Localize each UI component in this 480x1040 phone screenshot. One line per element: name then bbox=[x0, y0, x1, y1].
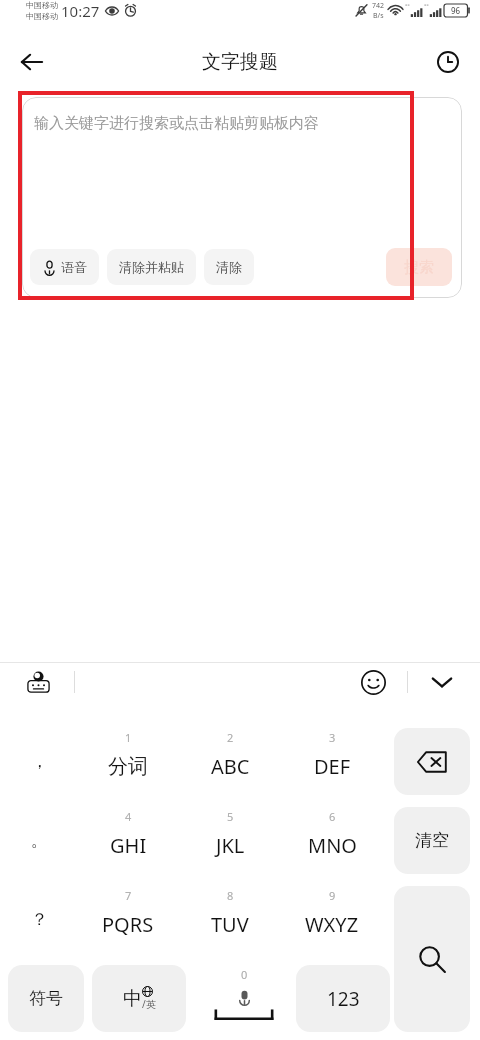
staticText: 742 bbox=[372, 1, 385, 11]
staticText: 清除 bbox=[216, 259, 242, 275]
staticText: / bbox=[142, 997, 146, 1011]
button[interactable]: ！ bbox=[8, 961, 70, 1036]
staticText: 0 bbox=[241, 967, 248, 982]
button[interactable]: 语音 bbox=[30, 249, 99, 285]
staticText: ， bbox=[31, 751, 48, 772]
button[interactable]: 清除并粘贴 bbox=[107, 249, 196, 285]
button[interactable]: 3 bbox=[282, 724, 382, 799]
staticText: 1 bbox=[125, 730, 132, 745]
staticText: ABC bbox=[211, 753, 250, 780]
staticText: MNO bbox=[308, 832, 357, 859]
staticText: 中国移动 bbox=[26, 11, 58, 21]
staticText: 96 bbox=[451, 5, 461, 16]
staticText: ？ bbox=[31, 909, 48, 930]
staticText: 输入关键字进行搜索或点击粘贴剪贴板内容 bbox=[34, 114, 319, 133]
button[interactable]: 输入法设置 bbox=[18, 662, 58, 702]
button[interactable]: 6 bbox=[282, 803, 382, 878]
button[interactable]: 清空 bbox=[394, 807, 470, 874]
staticText: 6 bbox=[329, 809, 336, 824]
button[interactable]: 历史记录 bbox=[426, 40, 470, 84]
button[interactable]: 。 bbox=[8, 803, 70, 878]
button[interactable]: 删除 bbox=[394, 728, 470, 795]
button[interactable]: 收起键盘 bbox=[422, 662, 462, 702]
button[interactable]: 123 bbox=[296, 965, 390, 1032]
staticText: TUV bbox=[211, 911, 249, 938]
staticText: 10:27 bbox=[61, 1, 100, 21]
button[interactable]: 符号 bbox=[8, 965, 84, 1032]
staticText: 文字搜题 bbox=[202, 50, 278, 74]
staticText: B/s bbox=[373, 11, 384, 21]
staticText: 中国移动 bbox=[26, 0, 58, 10]
button[interactable]: 7 bbox=[78, 882, 178, 957]
staticText: 符号 bbox=[29, 988, 63, 1009]
staticText: 。 bbox=[31, 830, 48, 851]
staticText: ！ bbox=[31, 988, 48, 1009]
staticText: 2 bbox=[227, 730, 234, 745]
staticText: 清空 bbox=[415, 830, 449, 851]
staticText: 中 bbox=[123, 987, 142, 1011]
staticText: 8 bbox=[227, 888, 234, 903]
button[interactable]: ， bbox=[8, 724, 70, 799]
staticText: 123 bbox=[327, 986, 360, 1012]
button[interactable]: 4 bbox=[78, 803, 178, 878]
staticText: JKL bbox=[216, 832, 245, 859]
staticText: PQRS bbox=[102, 911, 154, 938]
staticText: GHI bbox=[110, 832, 147, 859]
staticText: 分词 bbox=[108, 754, 148, 779]
button[interactable]: 搜索 bbox=[386, 248, 452, 286]
button[interactable]: 表情 bbox=[353, 662, 393, 702]
button[interactable]: ？ bbox=[8, 882, 70, 957]
staticText: DEF bbox=[314, 753, 351, 780]
staticText: 7 bbox=[125, 888, 132, 903]
staticText: 清除并粘贴 bbox=[119, 259, 184, 275]
button[interactable]: 返回 bbox=[8, 38, 56, 86]
staticText: 5 bbox=[227, 809, 234, 824]
staticText: 9 bbox=[329, 888, 336, 903]
button[interactable]: 9 bbox=[282, 882, 382, 957]
staticText: 3 bbox=[329, 730, 336, 745]
button[interactable]: 2 bbox=[180, 724, 280, 799]
staticText: 4 bbox=[125, 809, 132, 824]
button[interactable]: 搜索 bbox=[394, 886, 470, 1032]
staticText: 语音 bbox=[61, 259, 87, 275]
button[interactable]: 8 bbox=[180, 882, 280, 957]
button[interactable]: 空格 bbox=[194, 965, 294, 1032]
button[interactable]: 中 bbox=[92, 965, 186, 1032]
button[interactable]: 5 bbox=[180, 803, 280, 878]
staticText: 英 bbox=[146, 998, 156, 1011]
staticText: WXYZ bbox=[305, 911, 359, 938]
button[interactable]: 清除 bbox=[204, 249, 254, 285]
staticText: 搜索 bbox=[404, 258, 434, 277]
button[interactable]: 1 bbox=[78, 724, 178, 799]
